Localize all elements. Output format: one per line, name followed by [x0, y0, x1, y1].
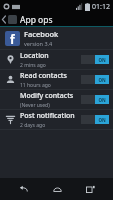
staticText: 2 days ago [20, 122, 46, 129]
button[interactable]: Back [12, 178, 34, 200]
button[interactable]: Recent apps [79, 178, 101, 200]
button[interactable]: Read contacts [0, 70, 113, 89]
button[interactable]: Toggle permission [81, 115, 109, 124]
staticText: Location [20, 51, 49, 61]
button[interactable]: Location [0, 50, 113, 69]
button[interactable]: Modify contacts [0, 90, 113, 109]
staticText: App ops [20, 14, 53, 26]
staticText: ON [98, 117, 106, 123]
staticText: Modify contacts [20, 91, 74, 101]
staticText: version 3.4 [24, 40, 53, 47]
button[interactable]: f [0, 27, 113, 49]
staticText: ON [98, 57, 106, 63]
staticText: Facebook [24, 29, 59, 39]
staticText: 11 hours ago [20, 82, 51, 89]
staticText: (Never used) [20, 102, 50, 109]
staticText: f [10, 31, 15, 46]
button[interactable]: Toggle permission [81, 95, 109, 104]
staticText: ON [98, 77, 106, 83]
button[interactable]: Toggle permission [81, 55, 109, 64]
button[interactable]: Post notification [0, 110, 113, 129]
staticText: Read contacts [20, 71, 67, 81]
staticText: 01:12 [92, 2, 110, 12]
button[interactable]: Navigate up [0, 13, 20, 26]
button[interactable]: Home [46, 178, 68, 200]
staticText: Post notification [20, 111, 75, 121]
staticText: ON [98, 97, 106, 103]
staticText: 2 mins ago [20, 62, 46, 69]
button[interactable]: Toggle permission [81, 75, 109, 84]
